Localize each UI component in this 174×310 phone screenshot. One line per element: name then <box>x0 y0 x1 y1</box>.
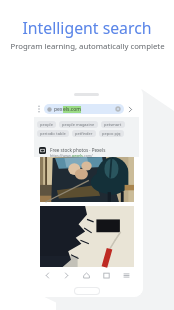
button[interactable]: Clear <box>115 106 121 112</box>
staticText: pex <box>54 106 63 113</box>
staticText: els.com <box>63 106 81 113</box>
button[interactable]: Home <box>80 269 92 281</box>
button[interactable]: Forward <box>60 269 72 281</box>
button[interactable]: Free stock photos · Pexels <box>39 147 139 157</box>
staticText: pexels <box>72 153 83 157</box>
staticText: people magazine <box>62 122 95 127</box>
staticText: Free stock photos · Pexels <box>50 147 106 153</box>
button[interactable]: pepco pjq <box>99 130 124 137</box>
staticText: periodic table <box>40 131 66 136</box>
staticText: petfinder <box>75 131 93 136</box>
button[interactable]: Go <box>126 105 135 114</box>
button[interactable]: people <box>37 121 56 128</box>
button[interactable]: Tabs <box>100 269 112 281</box>
staticText: .com/ <box>83 153 93 157</box>
staticText: people <box>40 122 53 127</box>
button[interactable]: petfinder <box>72 130 96 137</box>
staticText: petsmart <box>104 122 122 127</box>
button[interactable]: pex <box>44 104 124 114</box>
button[interactable]: Menu <box>120 269 132 281</box>
button[interactable]: More options <box>35 104 43 114</box>
button[interactable]: periodic table <box>37 130 69 137</box>
staticText: Intelligent search <box>22 17 152 39</box>
staticText: Program learning, automatically complete <box>10 41 165 52</box>
button[interactable]: Back <box>41 269 53 281</box>
staticText: pepco pjq <box>102 131 121 136</box>
button[interactable]: petsmart <box>101 121 125 128</box>
staticText: https://www. <box>50 153 72 157</box>
button[interactable]: people magazine <box>59 121 98 128</box>
